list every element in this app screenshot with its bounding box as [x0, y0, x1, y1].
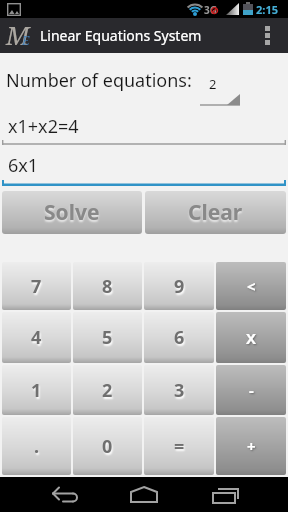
button[interactable]: +	[216, 417, 286, 475]
button[interactable]: x1+x2=4	[0, 107, 288, 145]
staticText: .	[34, 434, 40, 459]
button[interactable]: =	[144, 417, 214, 475]
button[interactable]: X	[216, 312, 286, 363]
staticText: M	[6, 18, 30, 52]
staticText: 6	[174, 325, 185, 350]
staticText: 6x1	[8, 153, 39, 178]
staticText: 3	[174, 378, 185, 403]
button[interactable]: Clear	[145, 191, 286, 234]
button[interactable]: 1	[2, 365, 71, 415]
staticText: Clear	[188, 198, 243, 227]
button[interactable]: 5	[73, 312, 142, 363]
staticText: 2	[209, 75, 217, 93]
staticText: 8	[102, 274, 113, 299]
button[interactable]: Solve	[2, 191, 142, 234]
staticText: 1	[31, 378, 42, 403]
button[interactable]: -	[216, 365, 286, 415]
staticText: <	[247, 276, 256, 296]
button[interactable]: 6	[144, 312, 214, 363]
staticText: Linear Equations System	[40, 26, 202, 45]
button[interactable]	[123, 477, 165, 512]
button[interactable]: 7	[2, 262, 71, 310]
staticText: Number of equations:	[6, 68, 192, 93]
staticText: x1+x2=4	[8, 114, 79, 139]
button[interactable]: 4	[2, 312, 71, 363]
staticText: -	[249, 380, 254, 400]
staticText: X	[246, 328, 257, 348]
staticText: 0	[102, 434, 113, 459]
button[interactable]: 6x1	[0, 145, 288, 186]
staticText: 5	[102, 325, 113, 350]
staticText: 2	[102, 378, 113, 403]
staticText: 4	[31, 325, 42, 350]
button[interactable]: 2	[73, 365, 142, 415]
button[interactable]: <	[216, 262, 286, 310]
staticText: +	[247, 436, 256, 456]
staticText: E	[22, 32, 30, 48]
staticText: 2:15	[256, 2, 278, 17]
button[interactable]: 0	[73, 417, 142, 475]
staticText: 7	[31, 274, 42, 299]
button[interactable]: 8	[73, 262, 142, 310]
staticText: Solve	[44, 198, 100, 227]
button[interactable]: 2	[200, 70, 240, 106]
button[interactable]: 3	[144, 365, 214, 415]
button[interactable]	[205, 477, 247, 512]
staticText: =	[174, 434, 185, 459]
staticText: 3G	[204, 3, 217, 17]
button[interactable]: 9	[144, 262, 214, 310]
button[interactable]: .	[2, 417, 71, 475]
staticText: 9	[174, 274, 185, 299]
button[interactable]	[40, 477, 82, 512]
button[interactable]	[265, 26, 270, 45]
